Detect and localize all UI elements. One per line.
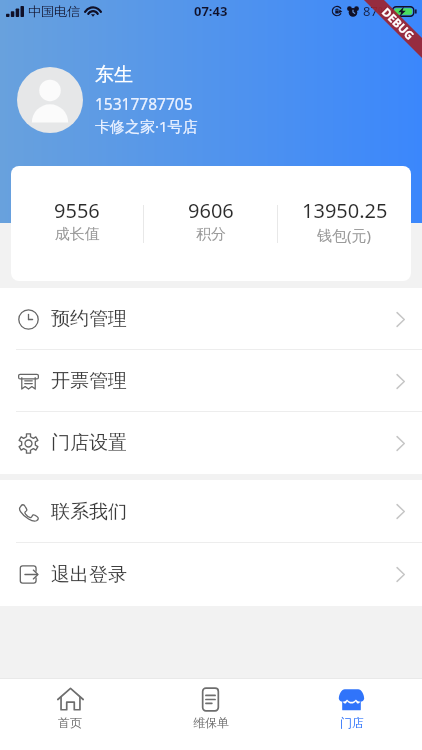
button[interactable]: 门店 (281, 679, 422, 750)
staticText: 退出登录 (51, 563, 127, 587)
staticText: 联系我们 (51, 500, 127, 524)
staticText: 9606 (188, 197, 234, 224)
staticText: 积分 (196, 225, 226, 244)
staticText: 9556 (54, 197, 100, 224)
button[interactable]: 退出登录 (0, 543, 422, 606)
staticText: 首页 (58, 715, 82, 730)
button[interactable]: 开票管理 (0, 350, 422, 412)
staticText: 门店设置 (51, 431, 127, 455)
staticText: 卡修之家·1号店 (95, 116, 198, 136)
button[interactable]: 首页 (0, 679, 140, 750)
staticText: 13950.25 (302, 197, 388, 224)
staticText: 中国电信 (28, 3, 80, 19)
staticText: 门店 (340, 715, 364, 730)
staticText: DEBUG (378, 4, 418, 44)
staticText: 东生 (95, 63, 133, 87)
staticText: 维保单 (193, 715, 229, 730)
button[interactable]: 预约管理 (0, 288, 422, 350)
staticText: 07:43 (194, 2, 228, 20)
button[interactable]: 维保单 (140, 679, 281, 750)
staticText: 87% (363, 2, 389, 20)
button[interactable]: 门店设置 (0, 412, 422, 474)
staticText: 预约管理 (51, 307, 127, 331)
button[interactable]: 联系我们 (0, 480, 422, 543)
staticText: 开票管理 (51, 369, 127, 393)
staticText: 成长值 (55, 225, 100, 244)
staticText: 钱包(元) (317, 225, 372, 245)
staticText: 15317787705 (95, 93, 193, 114)
